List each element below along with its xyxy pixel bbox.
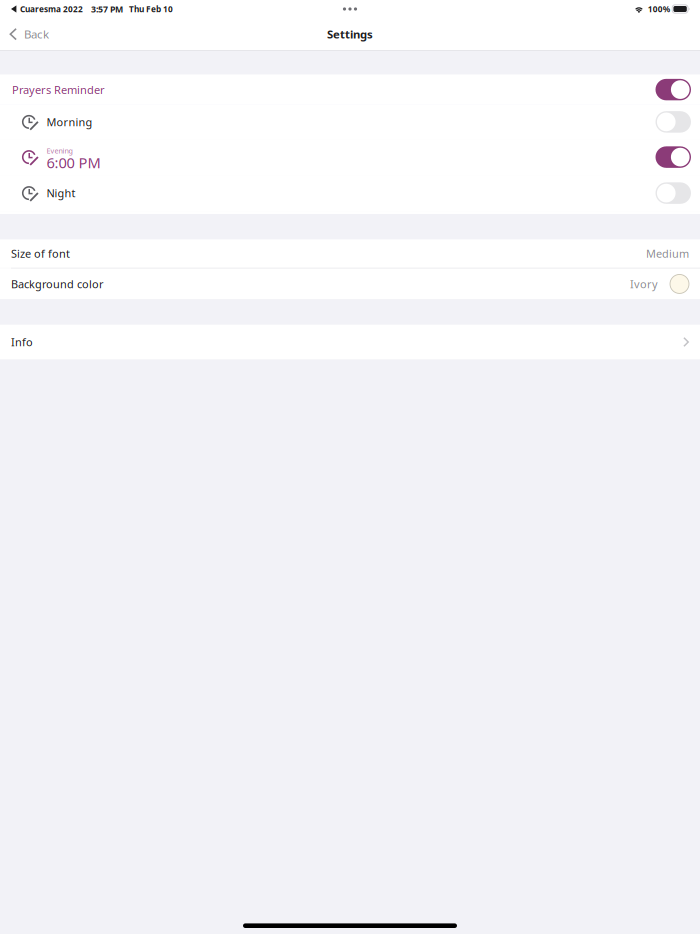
button[interactable]: Back xyxy=(0,21,49,47)
staticText: Ivory xyxy=(630,276,658,291)
staticText: Evening xyxy=(47,146,73,155)
button[interactable]: Size of font xyxy=(0,239,700,268)
staticText: Settings xyxy=(327,26,373,42)
staticText: Night xyxy=(47,186,76,201)
staticText: 3:57 PM xyxy=(91,3,123,15)
staticText: Background color xyxy=(11,276,104,291)
button[interactable]: Night xyxy=(0,175,700,211)
staticText: Medium xyxy=(646,246,689,261)
button[interactable]: Evening xyxy=(0,139,700,175)
button[interactable]: Morning xyxy=(0,105,700,139)
staticText: Thu Feb 10 xyxy=(129,3,173,15)
staticText: Prayers Reminder xyxy=(12,82,105,97)
staticText: Info xyxy=(11,335,33,349)
staticText: Size of font xyxy=(11,246,70,261)
staticText: Morning xyxy=(47,114,93,129)
staticText: 100% xyxy=(648,3,670,15)
button[interactable]: Background color xyxy=(0,269,700,299)
button[interactable]: Prayers Reminder xyxy=(0,74,700,105)
button[interactable]: Info xyxy=(0,325,700,359)
staticText: Cuaresma 2022 xyxy=(20,3,83,15)
staticText: 6:00 PM xyxy=(47,152,101,172)
staticText: Back xyxy=(24,26,49,42)
